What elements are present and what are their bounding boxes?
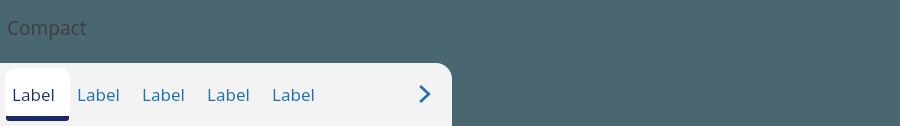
button[interactable]: Next (400, 70, 448, 118)
staticText: Label (142, 83, 185, 106)
staticText: Label (12, 83, 55, 106)
staticText: Label (77, 83, 120, 106)
button[interactable]: Label (272, 83, 315, 106)
button[interactable]: Label (12, 83, 55, 106)
staticText: Compact (7, 15, 87, 41)
staticText: Label (207, 83, 250, 106)
button[interactable]: Label (142, 83, 185, 106)
staticText: Label (272, 83, 315, 106)
button[interactable] (5, 68, 70, 121)
button[interactable]: Label (77, 83, 120, 106)
button[interactable]: Label (207, 83, 250, 106)
